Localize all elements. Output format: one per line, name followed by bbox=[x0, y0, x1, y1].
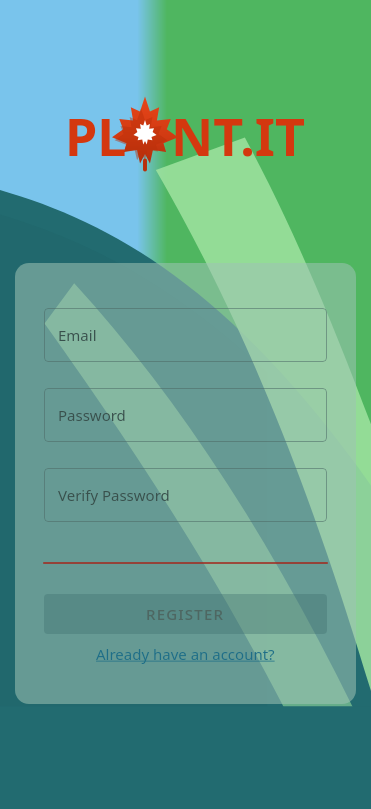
staticText: Password bbox=[58, 405, 126, 425]
button[interactable]: Already have an account? bbox=[44, 644, 327, 664]
staticText: PL bbox=[65, 100, 127, 171]
staticText: Email bbox=[58, 325, 97, 345]
button[interactable]: Password bbox=[44, 388, 327, 442]
staticText: REGISTER bbox=[146, 604, 225, 624]
other: Maple leaf logo bbox=[112, 95, 178, 171]
button[interactable]: Verify Password bbox=[44, 468, 327, 522]
button[interactable]: Email bbox=[44, 308, 327, 362]
staticText: NT.IT bbox=[171, 100, 306, 171]
staticText: Verify Password bbox=[58, 485, 170, 505]
button[interactable]: REGISTER bbox=[44, 594, 327, 634]
staticText: Already have an account? bbox=[96, 644, 275, 664]
